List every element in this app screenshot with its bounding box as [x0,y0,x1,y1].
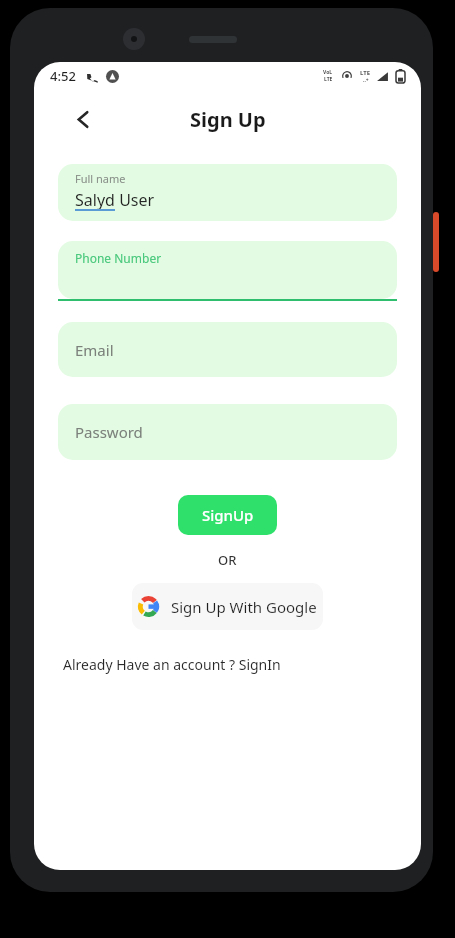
staticText: Password [75,422,143,442]
staticText: Salyd [75,189,115,211]
staticText: Sign Up [190,106,266,133]
button[interactable]: Sign Up With Google [132,583,323,630]
staticText: ..+ [363,77,369,84]
staticText: 4:52 [50,67,76,85]
staticText: LTE [360,69,371,77]
staticText: OR [218,551,237,569]
staticText: VoL [323,69,333,76]
staticText: Already Have an account ? SignIn [63,655,281,674]
staticText: LTE [324,76,333,83]
staticText: Email [75,340,114,360]
button[interactable]: Email [58,322,397,377]
button[interactable]: Already Have an account ? SignIn [63,655,421,674]
button[interactable]: Back [66,102,100,136]
staticText: User [115,189,155,211]
button[interactable]: Full name [58,164,397,221]
button[interactable]: Password [58,404,397,460]
button[interactable]: SignUp [178,495,277,535]
button[interactable]: Phone Number [58,241,397,301]
staticText: Phone Number [75,250,162,266]
staticText: SignUp [202,505,254,525]
staticText: Full name [75,171,126,186]
staticText: Sign Up With Google [171,597,317,617]
